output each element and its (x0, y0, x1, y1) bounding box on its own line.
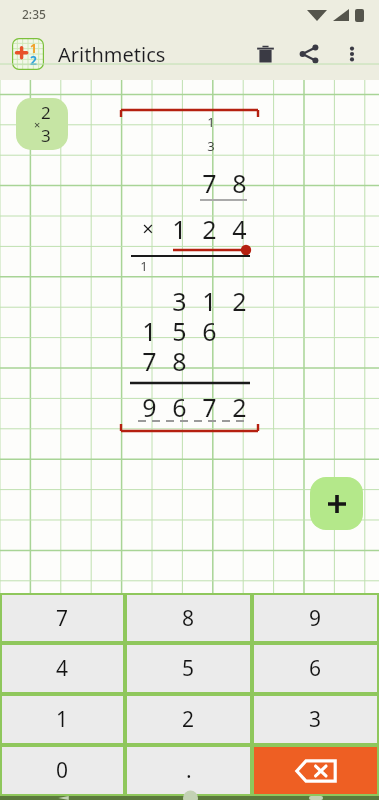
staticText: . (186, 756, 192, 785)
staticText: 3 (172, 284, 187, 318)
button[interactable]: 7 (2, 595, 123, 641)
button[interactable]: Delete (243, 32, 287, 76)
staticText: 0 (56, 756, 69, 785)
button[interactable]: Add (310, 477, 363, 530)
button[interactable]: Home (127, 796, 253, 800)
staticText: 3 (41, 124, 51, 147)
staticText: 1 (202, 284, 217, 318)
staticText: 6 (172, 390, 187, 424)
button[interactable]: Recents (253, 796, 379, 800)
staticText: 7 (202, 390, 217, 424)
button[interactable]: 6 (254, 645, 377, 692)
button[interactable]: 0 (2, 747, 123, 794)
staticText: 2 (232, 390, 247, 424)
button[interactable]: 1 (2, 696, 123, 743)
button[interactable]: 8 (127, 595, 250, 641)
button[interactable]: 5 (127, 645, 250, 692)
staticText: 2 (41, 101, 51, 124)
staticText: 8 (232, 166, 247, 200)
staticText: Arithmetics (58, 41, 166, 68)
staticText: 1 (142, 314, 157, 348)
staticText: 6 (202, 314, 217, 348)
staticText: 3 (309, 705, 322, 734)
staticText: 1 (172, 212, 187, 246)
staticText: 1 (140, 257, 148, 275)
button[interactable]: App icon (12, 38, 44, 70)
staticText: 3 (207, 137, 215, 155)
staticText: 2 (202, 212, 217, 246)
staticText: × (34, 117, 41, 132)
button[interactable]: 2 (127, 696, 250, 743)
staticText: × (142, 215, 154, 242)
button[interactable]: Backspace (254, 747, 377, 794)
staticText: 2 (232, 284, 247, 318)
button[interactable]: 3 (254, 696, 377, 743)
staticText: 5 (172, 314, 187, 348)
staticText: 7 (56, 604, 69, 633)
staticText: 4 (232, 212, 247, 246)
staticText: 2 (182, 705, 195, 734)
button[interactable]: 9 (254, 595, 377, 641)
staticText: 1 (30, 40, 37, 56)
staticText: 1 (207, 113, 215, 131)
staticText: 1 (56, 705, 69, 734)
staticText: 2:35 (22, 6, 46, 22)
staticText: 2 (30, 52, 37, 68)
button[interactable]: × (16, 98, 68, 150)
staticText: 9 (142, 390, 157, 424)
staticText: 5 (182, 654, 195, 683)
staticText: 7 (202, 166, 217, 200)
staticText: 9 (309, 604, 322, 633)
button[interactable]: More options (331, 33, 373, 75)
button[interactable]: . (127, 747, 250, 794)
staticText: 7 (142, 344, 157, 378)
staticText: 8 (182, 604, 195, 633)
button[interactable]: Back (0, 796, 127, 800)
staticText: 8 (172, 344, 187, 378)
staticText: 4 (56, 654, 69, 683)
staticText: 6 (309, 654, 322, 683)
button[interactable]: 4 (2, 645, 123, 692)
button[interactable]: Share (287, 32, 331, 76)
